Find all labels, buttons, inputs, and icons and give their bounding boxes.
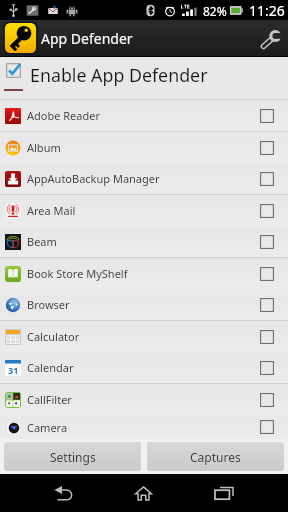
staticText: Book Store MyShelf <box>27 266 128 281</box>
button[interactable]: Adobe Reader <box>0 100 288 131</box>
staticText: Beam <box>27 234 57 249</box>
staticText: Album <box>27 140 61 155</box>
staticText: Browser <box>27 297 70 312</box>
staticText: AppAutoBackup Manager <box>27 171 160 186</box>
button[interactable]: Book Store MyShelf <box>0 258 288 289</box>
staticText: Settings <box>50 449 96 465</box>
staticText: Captures <box>190 449 241 465</box>
button[interactable]: Calculator <box>0 321 288 352</box>
button[interactable]: 31 <box>0 352 288 383</box>
staticText: 31 <box>8 364 19 376</box>
button[interactable]: Area Mail <box>0 195 288 226</box>
staticText: Camera <box>27 420 68 435</box>
staticText: Calculator <box>27 329 80 344</box>
staticText: 11:26 <box>249 1 285 20</box>
button[interactable]: Album <box>0 132 288 163</box>
button[interactable]: Camera <box>0 415 288 439</box>
button[interactable]: Enable App Defender <box>0 57 288 99</box>
button[interactable]: Captures <box>147 442 284 471</box>
button[interactable]: Back <box>24 474 104 512</box>
button[interactable]: Beam <box>0 226 288 257</box>
button[interactable]: Recents <box>184 474 264 512</box>
button[interactable]: Settings <box>4 442 141 471</box>
staticText: Calendar <box>27 360 74 375</box>
button[interactable]: Home <box>103 474 183 512</box>
staticText: Area Mail <box>27 203 76 218</box>
button[interactable]: Browser <box>0 289 288 320</box>
staticText: Enable App Defender <box>30 63 208 87</box>
staticText: Adobe Reader <box>27 108 101 123</box>
staticText: CallFilter <box>27 392 72 407</box>
button[interactable]: Settings <box>252 20 288 56</box>
button[interactable]: AppAutoBackup Manager <box>0 163 288 194</box>
staticText: 82% <box>203 3 227 19</box>
staticText: App Defender <box>41 29 133 48</box>
button[interactable]: CallFilter <box>0 384 288 415</box>
